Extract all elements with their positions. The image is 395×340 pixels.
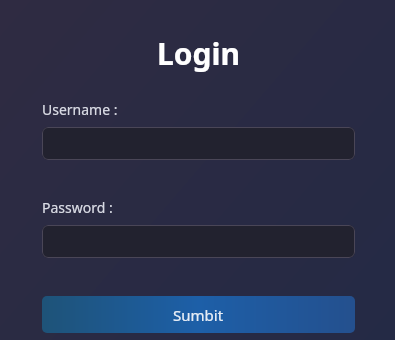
staticText: Username : — [42, 100, 118, 119]
staticText: Sumbit — [173, 305, 224, 325]
button[interactable]: Submit login — [42, 296, 355, 333]
button[interactable] — [42, 127, 355, 160]
button[interactable] — [42, 225, 355, 258]
staticText: Password : — [42, 198, 113, 217]
staticText: Login — [42, 33, 355, 74]
